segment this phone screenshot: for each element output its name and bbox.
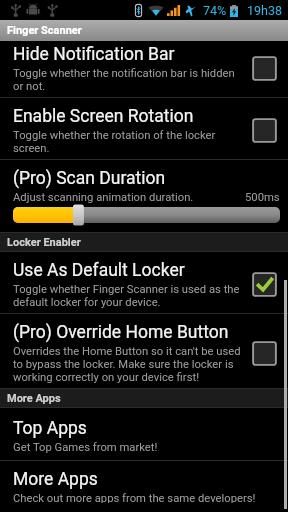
staticText: Toggle whether the notification bar is h… — [13, 67, 243, 93]
staticText: Locker Enabler — [7, 236, 81, 249]
staticText: Enable Screen Rotation — [13, 106, 194, 127]
staticText: Adjust scanning animation duration. — [13, 191, 245, 204]
button[interactable]: (Pro) Scan Duration — [0, 160, 288, 232]
staticText: (Pro) Scan Duration — [13, 168, 166, 189]
button[interactable]: Unchecked — [252, 118, 277, 143]
staticText: Top Apps — [13, 418, 87, 439]
button[interactable]: Use As Default Locker — [0, 252, 288, 313]
staticText: 74% — [203, 3, 227, 18]
staticText: (Pro) Override Home Button — [13, 322, 229, 343]
button[interactable]: Unchecked — [252, 341, 277, 366]
button[interactable]: Scan duration slider — [13, 207, 280, 223]
staticText: 500ms — [245, 191, 280, 204]
staticText: Toggle whether the rotation of the locke… — [13, 129, 243, 155]
staticText: More Apps — [13, 469, 98, 490]
button[interactable]: Top Apps — [0, 408, 288, 460]
staticText: Get Top Games from market! — [13, 441, 158, 454]
button[interactable]: Hide Notification Bar — [0, 41, 288, 97]
button[interactable]: (Pro) Override Home Button — [0, 314, 288, 388]
staticText: Overrides the Home Button so it can't be… — [13, 345, 243, 384]
button[interactable]: Checked — [252, 272, 277, 297]
button[interactable]: More Apps — [0, 461, 288, 507]
staticText: More Apps — [7, 392, 61, 405]
staticText: Use As Default Locker — [13, 260, 185, 281]
staticText: 19h38 — [247, 3, 282, 18]
button[interactable]: Unchecked — [252, 56, 277, 81]
staticText: Check out more apps from the same develo… — [13, 492, 256, 503]
staticText: Hide Notification Bar — [13, 44, 175, 65]
staticText: Finger Scanner — [7, 24, 82, 37]
staticText: Toggle whether Finger Scanner is used as… — [13, 283, 243, 309]
button[interactable]: Enable Screen Rotation — [0, 98, 288, 159]
